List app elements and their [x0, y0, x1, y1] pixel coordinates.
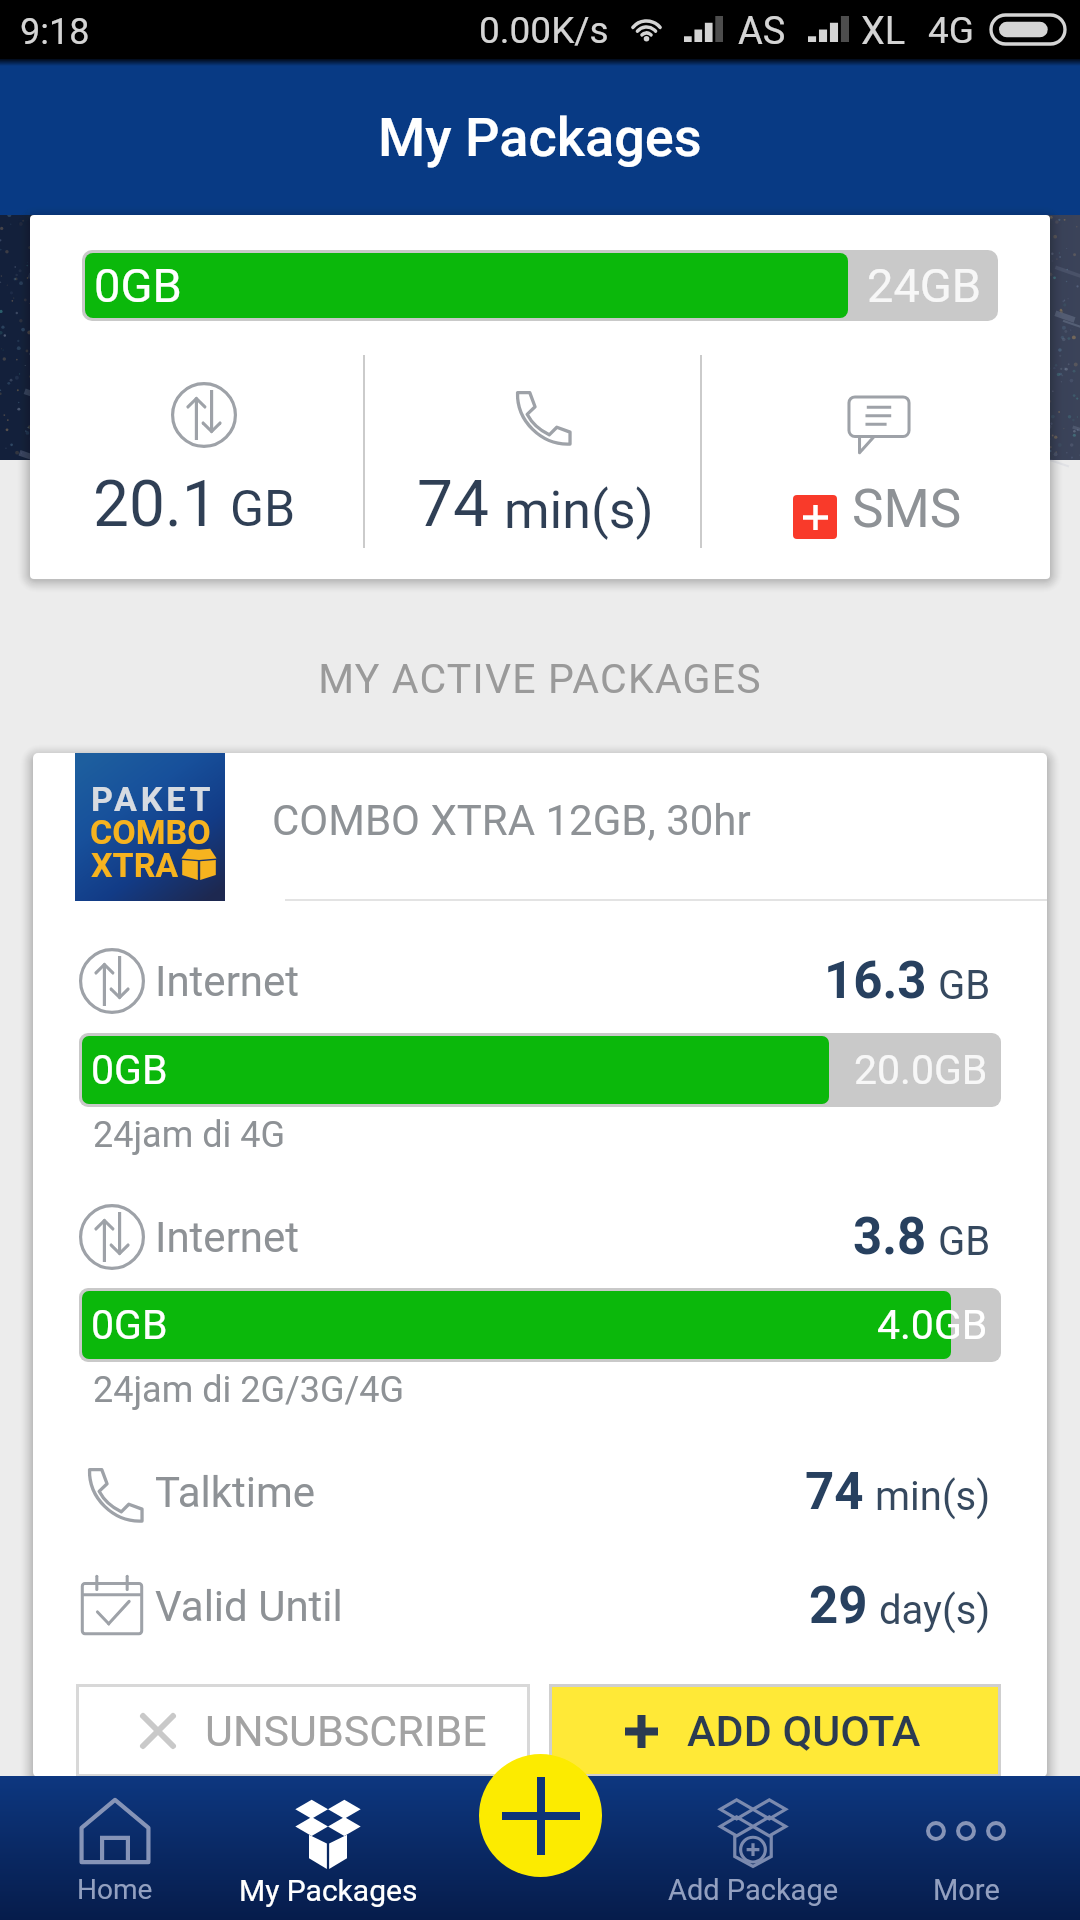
staticText: XL — [861, 9, 906, 54]
staticText: Valid Until — [155, 1582, 343, 1631]
staticText: My Packages — [239, 1873, 418, 1908]
staticText: 74 — [805, 1462, 864, 1522]
staticText: 16.3 — [824, 951, 927, 1011]
staticText: AS — [738, 9, 786, 54]
staticText: 29 — [809, 1576, 868, 1636]
staticText: COMBO XTRA 12GB, 30hr — [272, 796, 751, 845]
staticText: My Packages — [378, 106, 702, 169]
staticText: 3.8 — [853, 1207, 927, 1267]
button[interactable]: UNSUBSCRIBE — [76, 1684, 530, 1777]
staticText: min(s) — [504, 480, 654, 541]
staticText: Talktime — [155, 1468, 316, 1517]
staticText: 0GB — [91, 1046, 168, 1094]
button[interactable]: Add package — [479, 1754, 602, 1877]
staticText: Add Package — [668, 1873, 839, 1907]
staticText: 4G — [928, 9, 974, 52]
staticText: GB — [938, 1218, 991, 1265]
button[interactable]: Buy SMS — [793, 495, 837, 539]
staticText: GB — [938, 962, 991, 1009]
staticText: 0.00K/s — [479, 9, 609, 52]
staticText: min(s) — [875, 1473, 991, 1520]
staticText: 4.0GB — [877, 1301, 988, 1349]
staticText: day(s) — [879, 1587, 991, 1634]
staticText: 20.0GB — [854, 1046, 988, 1094]
staticText: More — [933, 1873, 1000, 1907]
staticText: 9:18 — [20, 11, 90, 53]
staticText: COMBO — [90, 812, 211, 852]
button[interactable]: Add Package — [648, 1776, 858, 1920]
staticText: 0GB — [91, 1301, 168, 1349]
staticText: SMS — [852, 478, 962, 540]
staticText: UNSUBSCRIBE — [205, 1706, 487, 1756]
staticText: 24GB — [867, 258, 982, 313]
staticText: Home — [77, 1873, 153, 1906]
button[interactable]: More — [861, 1776, 1071, 1920]
button[interactable]: My Packages — [223, 1776, 433, 1920]
staticText: 24jam di 2G/3G/4G — [93, 1369, 405, 1411]
staticText: Internet — [155, 1213, 300, 1262]
staticText: XTRA — [91, 845, 179, 885]
staticText: GB — [230, 480, 296, 539]
button[interactable]: PAKET — [33, 753, 1047, 1777]
staticText: 74 — [417, 467, 489, 542]
staticText: Internet — [155, 957, 300, 1006]
staticText: MY ACTIVE PACKAGES — [0, 655, 1080, 703]
staticText: 0GB — [94, 258, 182, 313]
button[interactable]: ADD QUOTA — [549, 1684, 1001, 1777]
button[interactable]: Home — [10, 1776, 220, 1920]
staticText: 20.1 — [93, 467, 218, 542]
staticText: PAKET — [91, 779, 215, 819]
staticText: ADD QUOTA — [687, 1706, 921, 1756]
staticText: 24jam di 4G — [93, 1114, 285, 1156]
